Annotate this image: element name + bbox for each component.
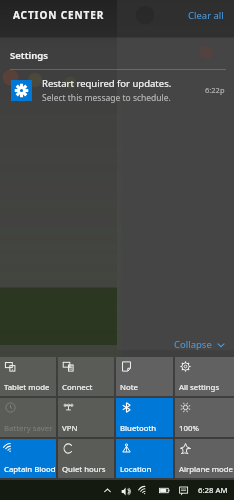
staticText: 100% — [179, 423, 199, 434]
staticText: All settings — [179, 382, 220, 393]
staticText: 6:28 AM — [198, 485, 228, 496]
staticText: Location — [120, 464, 152, 475]
staticText: Clear all — [188, 9, 224, 22]
button[interactable]: Bluetooth — [116, 398, 173, 437]
staticText: Settings — [10, 49, 48, 62]
button[interactable]: VPN — [58, 398, 114, 437]
button[interactable]: Tablet mode — [0, 357, 56, 396]
button[interactable]: Note — [116, 357, 173, 396]
staticText: Bluetooth — [120, 423, 157, 434]
button[interactable]: Restart required for updates. — [0, 70, 234, 110]
button[interactable]: 6:28 AM — [197, 485, 228, 496]
button[interactable]: Action Center — [178, 485, 190, 497]
button[interactable]: Show hidden icons — [102, 485, 113, 496]
staticText: Connect — [62, 382, 93, 393]
button[interactable]: Network — [139, 485, 151, 497]
staticText: Collapse — [174, 338, 212, 351]
button[interactable]: Captain Blood — [0, 439, 56, 478]
button[interactable]: Airplane mode — [175, 439, 234, 478]
staticText: VPN — [62, 423, 78, 434]
button[interactable]: Location — [116, 439, 173, 478]
staticText: Tablet mode — [4, 382, 50, 393]
button[interactable]: Battery — [158, 484, 171, 497]
button[interactable]: Battery saver — [0, 398, 56, 437]
staticText: Quiet hours — [62, 464, 106, 475]
staticText: Note — [120, 382, 138, 393]
button[interactable]: 100% — [175, 398, 234, 437]
button[interactable]: All settings — [175, 357, 234, 396]
button[interactable]: Quiet hours — [58, 439, 114, 478]
staticText: Select this message to schedule. — [42, 92, 171, 104]
staticText: Restart required for updates. — [42, 77, 172, 90]
button[interactable]: Collapse — [164, 334, 234, 357]
button[interactable]: Clear all — [178, 3, 234, 28]
button[interactable]: Volume — [120, 485, 132, 497]
staticText: Captain Blood — [4, 464, 56, 475]
staticText: 6:22p — [205, 85, 225, 95]
button[interactable]: Connect — [58, 357, 114, 396]
staticText: Airplane mode — [179, 464, 233, 475]
staticText: Battery saver — [4, 423, 53, 434]
staticText: ACTION CENTER — [13, 8, 105, 22]
